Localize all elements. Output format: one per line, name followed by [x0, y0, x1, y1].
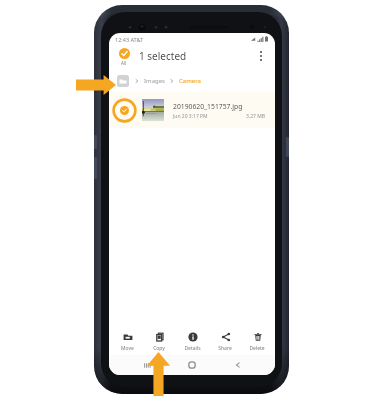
staticText: Copy: [153, 345, 165, 352]
staticText: 1 selected: [139, 49, 187, 63]
staticText: Jun 20 3:17 PM: [173, 113, 208, 120]
button[interactable]: 20190620_151757.jpg: [109, 92, 275, 128]
staticText: Delete: [249, 345, 265, 352]
button[interactable]: All: [114, 45, 134, 66]
button[interactable]: Camera: [179, 77, 201, 85]
button[interactable]: Move: [112, 327, 142, 355]
button[interactable]: Share: [210, 327, 240, 355]
button[interactable]: Copy: [144, 327, 174, 355]
staticText: 12:43 AT&T: [115, 36, 144, 43]
button[interactable]: Delete: [242, 327, 272, 355]
staticText: Share: [218, 345, 232, 352]
staticText: Details: [184, 345, 201, 352]
button[interactable]: Home: [117, 75, 129, 87]
staticText: 3.27 MB: [246, 113, 266, 120]
staticText: All: [121, 60, 127, 66]
button[interactable]: More options: [250, 45, 272, 67]
button[interactable]: Recents: [139, 357, 155, 373]
staticText: 20190620_151757.jpg: [173, 102, 243, 111]
button[interactable]: Details: [177, 327, 207, 355]
button[interactable]: Images: [144, 77, 165, 85]
button[interactable]: Back: [230, 357, 246, 373]
button[interactable]: Home: [184, 357, 200, 373]
staticText: Move: [121, 345, 134, 352]
